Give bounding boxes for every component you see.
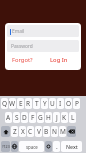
staticText: I bbox=[59, 99, 62, 108]
staticText: F bbox=[31, 113, 35, 122]
button[interactable]: P bbox=[73, 98, 80, 109]
staticText: K bbox=[62, 113, 67, 122]
button[interactable]: J bbox=[53, 112, 60, 123]
staticText: M bbox=[60, 127, 66, 136]
staticText: B bbox=[44, 127, 49, 136]
staticText: C bbox=[28, 127, 33, 136]
button[interactable]: D bbox=[21, 112, 28, 123]
button[interactable]: Y bbox=[41, 98, 48, 109]
button[interactable]: M bbox=[59, 126, 66, 137]
staticText: O bbox=[66, 99, 72, 108]
button[interactable]: Email bbox=[7, 25, 79, 37]
button[interactable]: . bbox=[53, 141, 60, 152]
button[interactable]: space bbox=[19, 141, 44, 152]
staticText: T bbox=[35, 99, 39, 108]
staticText: U bbox=[50, 99, 55, 108]
button[interactable]: U bbox=[49, 98, 56, 109]
button[interactable]: I bbox=[57, 98, 64, 109]
staticText: D bbox=[22, 113, 27, 122]
button[interactable]: B bbox=[43, 126, 50, 137]
staticText: Forgot? bbox=[12, 56, 33, 64]
staticText: . bbox=[56, 142, 58, 151]
button[interactable]: F bbox=[29, 112, 36, 123]
staticText: A bbox=[6, 113, 11, 122]
button[interactable]: O bbox=[65, 98, 72, 109]
staticText: Y bbox=[43, 99, 47, 108]
button[interactable]: L bbox=[69, 112, 76, 123]
button[interactable]: N bbox=[51, 126, 58, 137]
button[interactable]: Password bbox=[7, 40, 79, 52]
staticText: J bbox=[56, 113, 58, 122]
button[interactable]: C bbox=[27, 126, 34, 137]
staticText: Log In bbox=[50, 56, 68, 64]
button[interactable]: T bbox=[33, 98, 40, 109]
staticText: V bbox=[37, 127, 41, 136]
staticText: space bbox=[26, 144, 38, 150]
button[interactable]: V bbox=[35, 126, 42, 137]
staticText: Email bbox=[12, 28, 25, 35]
button[interactable]: A bbox=[5, 112, 12, 123]
button[interactable]: E bbox=[17, 98, 24, 109]
staticText: P bbox=[75, 99, 79, 108]
staticText: G bbox=[38, 113, 43, 122]
button[interactable]: S bbox=[13, 112, 20, 123]
button[interactable]: ?123 bbox=[1, 141, 10, 152]
staticText: W bbox=[9, 99, 16, 108]
staticText: Q bbox=[2, 99, 8, 108]
button[interactable]: Change keyboard language bbox=[11, 141, 18, 152]
button[interactable]: Backspace bbox=[67, 126, 76, 137]
button[interactable]: Settings bbox=[45, 141, 52, 152]
button[interactable]: Z bbox=[11, 126, 18, 137]
button[interactable]: Q bbox=[1, 98, 8, 109]
button[interactable]: H bbox=[45, 112, 52, 123]
button[interactable]: Log In bbox=[38, 52, 79, 68]
staticText: Z bbox=[13, 127, 17, 136]
staticText: H bbox=[46, 113, 51, 122]
button[interactable]: Forgot? bbox=[7, 52, 38, 68]
staticText: X bbox=[21, 127, 25, 136]
staticText: Next bbox=[66, 143, 78, 150]
staticText: ?123 bbox=[2, 144, 10, 149]
button[interactable]: Shift bbox=[1, 126, 10, 137]
button[interactable]: Next bbox=[61, 141, 82, 152]
button[interactable]: K bbox=[61, 112, 68, 123]
staticText: Password bbox=[11, 43, 33, 50]
staticText: L bbox=[71, 113, 75, 122]
staticText: N bbox=[52, 127, 57, 136]
button[interactable]: X bbox=[19, 126, 26, 137]
staticText: S bbox=[15, 113, 19, 122]
button[interactable]: G bbox=[37, 112, 44, 123]
staticText: R bbox=[26, 99, 31, 108]
button[interactable]: W bbox=[9, 98, 16, 109]
staticText: E bbox=[19, 99, 23, 108]
button[interactable]: R bbox=[25, 98, 32, 109]
